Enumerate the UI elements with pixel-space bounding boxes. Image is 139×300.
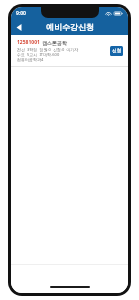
staticText: 신청 (112, 48, 121, 54)
staticText: 수요 5교시 IT대학-600 (17, 52, 60, 57)
staticText: 9:00 (16, 10, 26, 17)
staticText: 캡스톤공학 (42, 40, 67, 46)
button[interactable]: 12581001 (11, 35, 128, 66)
staticText: 전선 3학점 정원:0 신청:0 여기자 (17, 47, 79, 52)
staticText: 12581001 (17, 39, 40, 46)
staticText: 컴퓨터공학과4 (17, 57, 44, 62)
button[interactable]: Back (11, 19, 27, 35)
staticText: 예비수강신청 (46, 22, 94, 32)
button[interactable]: 신청 (110, 46, 123, 56)
